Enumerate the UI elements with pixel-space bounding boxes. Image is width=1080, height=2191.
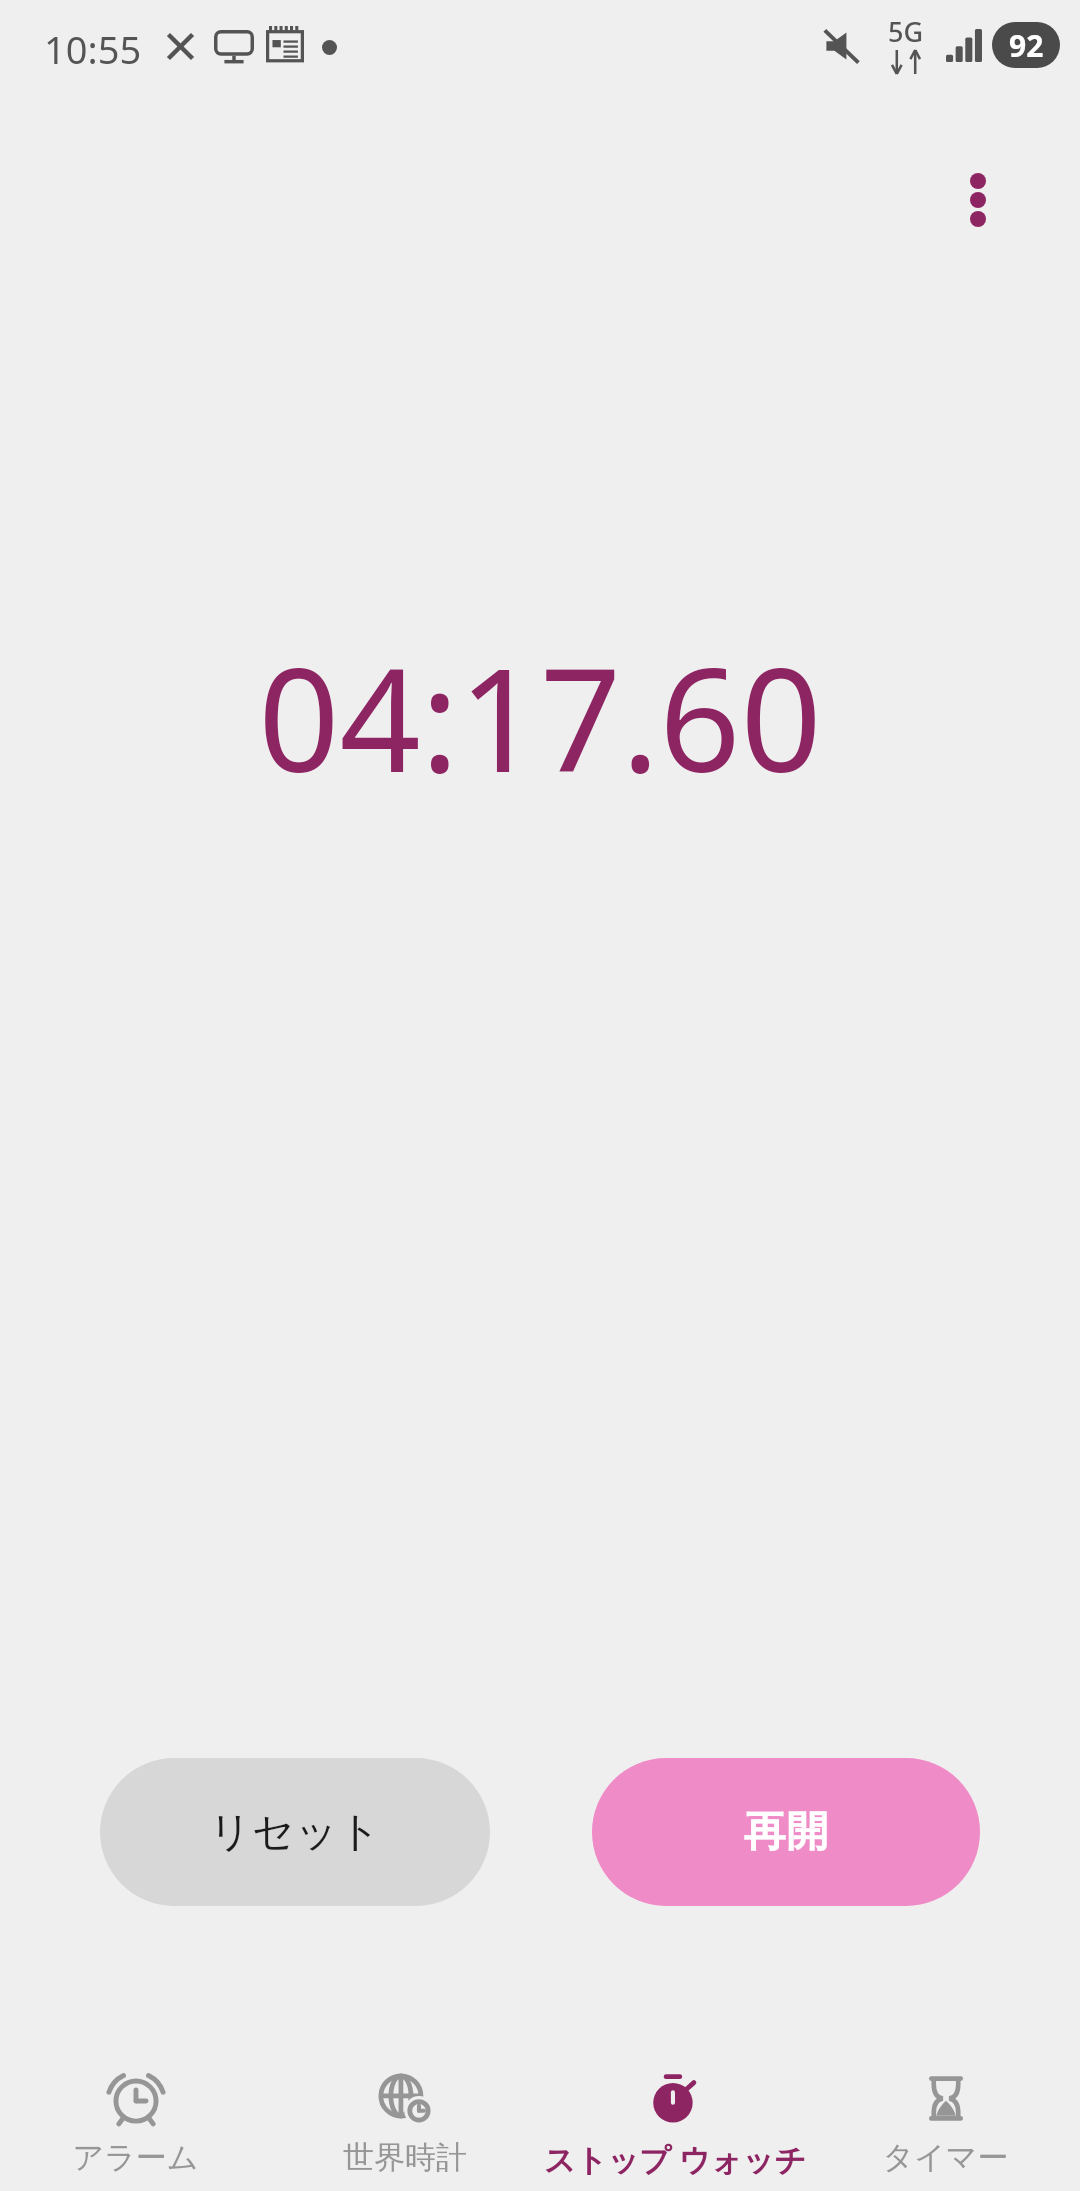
button[interactable]: More options (936, 158, 1020, 242)
button[interactable]: リセット (100, 1758, 490, 1906)
staticText: リセット (209, 1806, 381, 1859)
button[interactable]: 世界時計 (270, 2060, 540, 2191)
staticText: タイマー (882, 2138, 1009, 2177)
button[interactable]: タイマー (810, 2060, 1080, 2191)
staticText: 世界時計 (343, 2138, 467, 2177)
staticText: アラーム (72, 2138, 199, 2177)
button[interactable]: ストップ ウォッチ (540, 2060, 810, 2191)
staticText: 5G (888, 13, 924, 50)
button[interactable]: アラーム (0, 2060, 270, 2191)
staticText: 再開 (744, 1806, 828, 1859)
staticText: ストップ ウォッチ (544, 2138, 806, 2180)
staticText: 04:17.60 (258, 620, 822, 813)
staticText: 92 (1009, 25, 1044, 66)
button[interactable]: 再開 (592, 1758, 980, 1906)
staticText: 10:55 (44, 23, 142, 75)
